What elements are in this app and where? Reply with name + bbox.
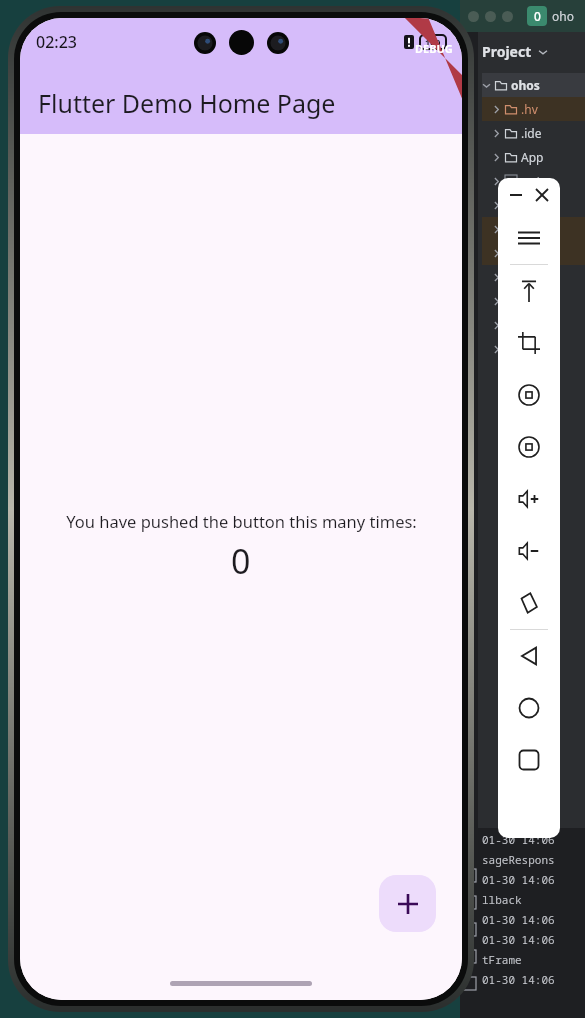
- button[interactable]: Rotate left: [498, 369, 560, 421]
- staticText: 0: [534, 8, 541, 24]
- staticText: noc: [521, 221, 542, 237]
- staticText: Flutter Demo Home Page: [38, 86, 336, 120]
- button[interactable]: Power: [498, 265, 560, 317]
- staticText: e: [521, 341, 528, 357]
- staticText: App: [521, 149, 544, 165]
- button[interactable]: Rotate right: [498, 421, 560, 473]
- staticText: ohos: [511, 77, 540, 93]
- staticText: bui: [521, 293, 539, 309]
- button[interactable]: oh_: [492, 241, 585, 265]
- staticText: .git: [521, 269, 540, 285]
- button[interactable]: Fold: [498, 577, 560, 629]
- button[interactable]: Screenshot: [498, 317, 560, 369]
- staticText: .ide: [521, 125, 542, 141]
- button[interactable]: Home: [498, 682, 560, 734]
- button[interactable]: Tool: [463, 896, 476, 909]
- staticText: .hv: [521, 101, 538, 117]
- button[interactable]: Volume up: [498, 473, 560, 525]
- button[interactable]: hvi: [492, 193, 585, 217]
- button[interactable]: Increment: [379, 875, 436, 932]
- staticText: You have pushed the button this many tim…: [66, 510, 417, 532]
- staticText: 0: [231, 538, 251, 584]
- button[interactable]: ohos: [482, 73, 585, 97]
- button[interactable]: Close: [533, 186, 551, 204]
- button[interactable]: Tool: [463, 950, 476, 963]
- button[interactable]: noc: [492, 217, 585, 241]
- staticText: llback: [482, 892, 522, 907]
- staticText: Project: [482, 42, 532, 61]
- staticText: tFrame: [482, 952, 522, 967]
- staticText: 01-30 14:06: [482, 972, 555, 987]
- staticText: hvi: [521, 197, 538, 213]
- staticText: oho: [552, 8, 574, 24]
- button[interactable]: .git: [492, 265, 585, 289]
- button[interactable]: ent: [492, 169, 585, 193]
- button[interactable]: Tool: [463, 869, 476, 882]
- button[interactable]: Tool: [463, 923, 476, 936]
- button[interactable]: hvi: [492, 313, 585, 337]
- button[interactable]: App: [492, 145, 585, 169]
- button[interactable]: Recents: [498, 734, 560, 786]
- button[interactable]: Back: [498, 630, 560, 682]
- staticText: 02:23: [36, 31, 77, 53]
- staticText: 01-30 14:06: [482, 912, 555, 927]
- button[interactable]: .hv: [492, 97, 585, 121]
- staticText: sageRespons: [482, 852, 555, 867]
- button[interactable]: .ide: [492, 121, 585, 145]
- staticText: 01-30 14:06: [482, 872, 555, 887]
- button[interactable]: Menu: [498, 212, 560, 264]
- button[interactable]: bui: [492, 289, 585, 313]
- staticText: ent: [521, 173, 542, 189]
- button[interactable]: Tool: [463, 977, 476, 990]
- button[interactable]: e: [492, 337, 585, 361]
- staticText: hvi: [521, 317, 538, 333]
- staticText: DEBUG: [415, 41, 453, 56]
- staticText: 100: [425, 36, 441, 48]
- staticText: 01-30 14:06: [482, 832, 555, 847]
- button[interactable]: Minimise: [507, 186, 525, 204]
- staticText: 01-30 14:06: [482, 932, 555, 947]
- button[interactable]: Volume down: [498, 525, 560, 577]
